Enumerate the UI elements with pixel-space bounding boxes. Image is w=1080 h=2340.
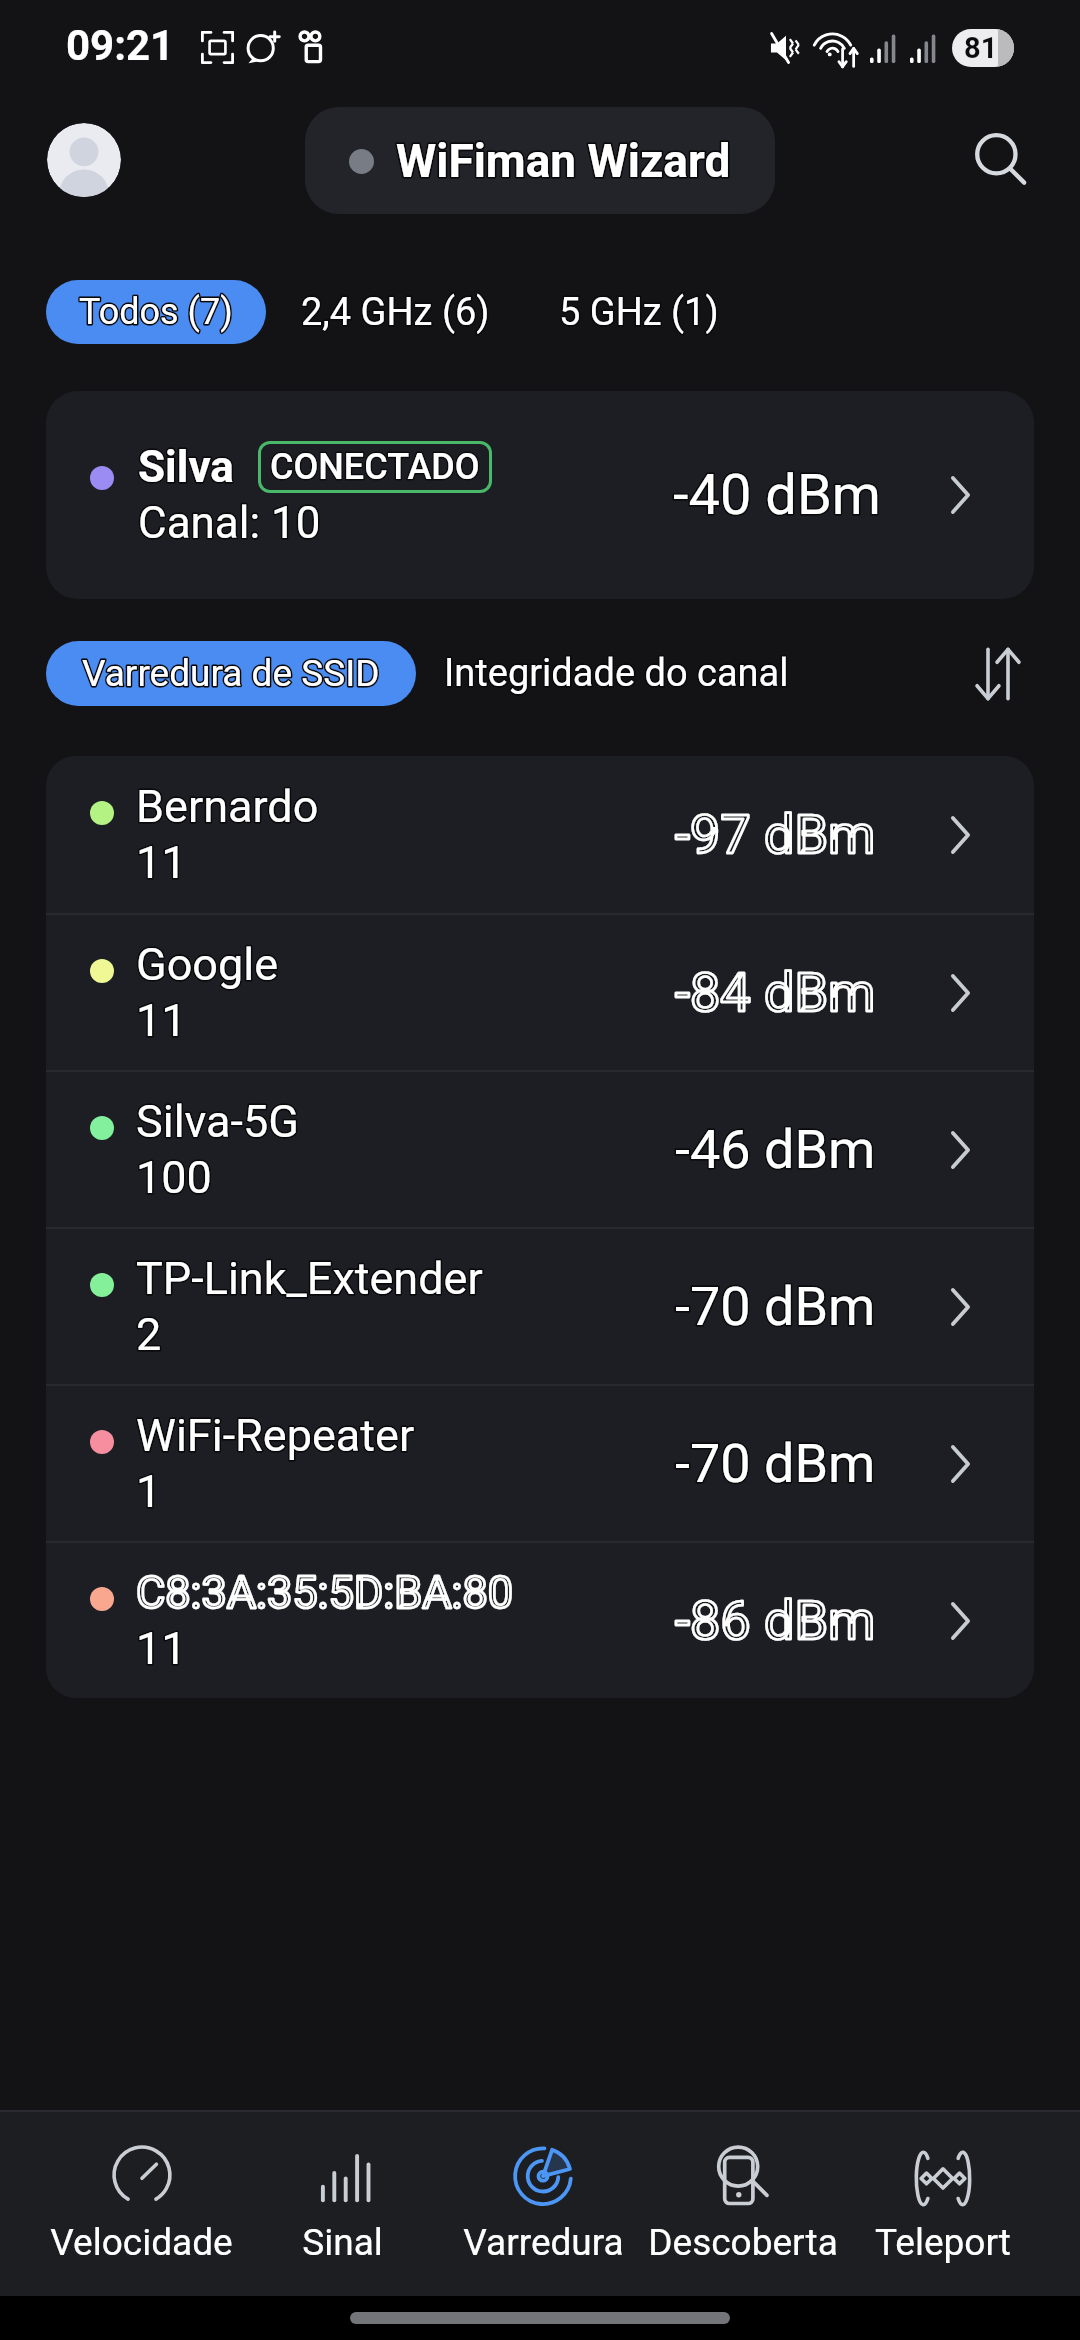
- staticText: TP-Link_Extender: [136, 1252, 483, 1305]
- staticText: -84 dBm: [675, 961, 876, 1024]
- staticText: 11: [136, 1622, 187, 1675]
- staticText: 11: [136, 836, 187, 889]
- button[interactable]: Sinal: [242, 2112, 443, 2296]
- button[interactable]: 2,4 GHz (6): [292, 280, 499, 344]
- staticText: WiFi-Repeater: [136, 1409, 415, 1462]
- staticText: Canal: 10: [138, 497, 321, 549]
- staticText: Canal: 10: [138, 497, 321, 549]
- staticText: 5 GHz (1): [559, 290, 719, 335]
- button[interactable]: Sort: [962, 641, 1034, 706]
- staticText: 2: [136, 1308, 162, 1361]
- staticText: -70 dBm: [675, 1432, 876, 1495]
- staticText: -40 dBm: [673, 462, 881, 528]
- staticText: Varredura de SSID: [82, 652, 380, 695]
- staticText: 2,4 GHz (6): [301, 290, 490, 335]
- staticText: 2: [136, 1308, 162, 1361]
- staticText: -46 dBm: [675, 1118, 876, 1181]
- staticText: Descoberta: [648, 2221, 838, 2264]
- staticText: WiFiman Wizard: [396, 134, 731, 188]
- staticText: Todos (7): [79, 291, 233, 333]
- button[interactable]: WiFi-Repeater: [46, 1386, 1034, 1541]
- staticText: Silva: [138, 441, 234, 493]
- button[interactable]: Google: [46, 915, 1034, 1070]
- staticText: Varredura: [463, 2221, 624, 2264]
- staticText: -70 dBm: [675, 1275, 876, 1338]
- staticText: -70 dBm: [675, 1275, 876, 1338]
- staticText: 1: [136, 1465, 162, 1518]
- button[interactable]: Teleport: [843, 2112, 1043, 2296]
- staticText: C8:3A:35:5D:BA:80: [136, 1566, 514, 1619]
- staticText: TP-Link_Extender: [136, 1252, 483, 1305]
- staticText: Todos (7): [79, 291, 233, 333]
- staticText: Integridade do canal: [444, 651, 789, 696]
- staticText: Silva-5G: [136, 1095, 299, 1148]
- staticText: Velocidade: [50, 2221, 233, 2264]
- button[interactable]: Bernardo: [46, 756, 1034, 913]
- staticText: Silva-5G: [136, 1095, 299, 1148]
- staticText: -46 dBm: [675, 1118, 876, 1181]
- staticText: Sinal: [302, 2221, 383, 2264]
- button[interactable]: Varredura: [443, 2112, 643, 2296]
- staticText: 2,4 GHz (6): [301, 290, 490, 335]
- staticText: Bernardo: [136, 780, 319, 833]
- button[interactable]: Silva: [46, 391, 1034, 599]
- button[interactable]: Silva-5G: [46, 1072, 1034, 1227]
- button[interactable]: Varredura de SSID: [46, 641, 416, 706]
- staticText: -70 dBm: [675, 1432, 876, 1495]
- button[interactable]: 5 GHz (1): [550, 280, 728, 344]
- button[interactable]: Profile: [47, 123, 121, 197]
- staticText: Silva: [138, 441, 234, 493]
- button[interactable]: Todos (7): [46, 280, 266, 344]
- staticText: -40 dBm: [673, 462, 881, 528]
- staticText: 100: [136, 1151, 212, 1204]
- button[interactable]: Search: [960, 119, 1042, 201]
- staticText: Google: [136, 938, 279, 991]
- staticText: 09:21: [66, 21, 175, 70]
- button[interactable]: TP-Link_Extender: [46, 1229, 1034, 1384]
- staticText: 81: [964, 31, 998, 65]
- staticText: 11: [136, 836, 187, 889]
- button[interactable]: Velocidade: [41, 2112, 242, 2296]
- staticText: 100: [136, 1151, 212, 1204]
- button[interactable]: Integridade do canal: [435, 641, 798, 706]
- staticText: -86 dBm: [675, 1589, 876, 1652]
- staticText: Teleport: [875, 2221, 1011, 2264]
- staticText: 1: [136, 1465, 162, 1518]
- staticText: Google: [136, 938, 279, 991]
- staticText: WiFi-Repeater: [136, 1409, 415, 1462]
- staticText: 11: [136, 994, 187, 1047]
- staticText: 11: [136, 1622, 187, 1675]
- staticText: CONECTADO: [270, 446, 480, 488]
- staticText: WiFiman Wizard: [396, 134, 731, 188]
- staticText: CONECTADO: [270, 446, 480, 488]
- button[interactable]: C8:3A:35:5D:BA:80: [46, 1543, 1034, 1698]
- staticText: Integridade do canal: [444, 651, 789, 696]
- button[interactable]: Descoberta: [643, 2112, 843, 2296]
- staticText: 11: [136, 994, 187, 1047]
- button[interactable]: WiFiman Wizard: [305, 107, 775, 214]
- staticText: -97 dBm: [675, 803, 876, 866]
- staticText: Bernardo: [136, 780, 319, 833]
- staticText: Varredura de SSID: [82, 652, 380, 695]
- staticText: 5 GHz (1): [559, 290, 719, 335]
